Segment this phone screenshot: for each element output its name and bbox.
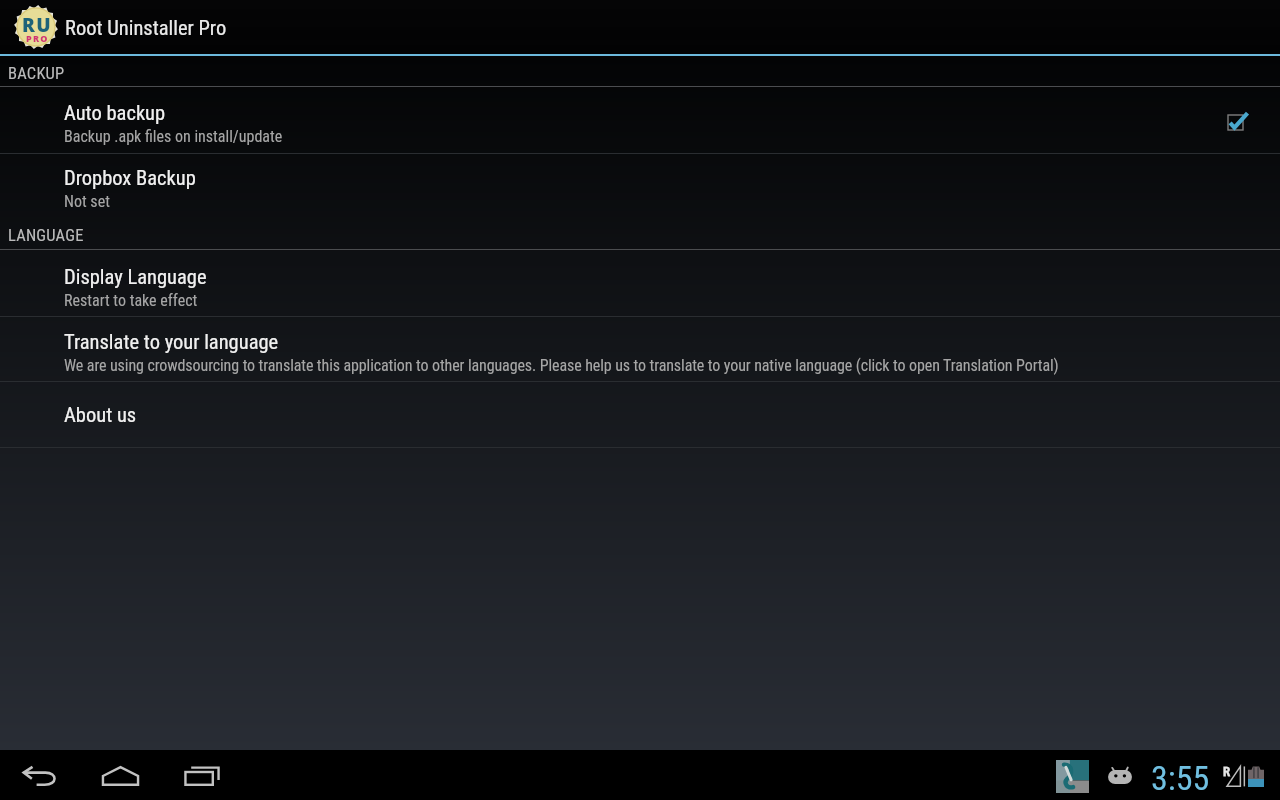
staticText: Display Language bbox=[64, 265, 207, 289]
button[interactable]: System update bbox=[1107, 767, 1133, 784]
staticText: Auto backup bbox=[64, 101, 166, 125]
staticText: R bbox=[1223, 764, 1231, 779]
button[interactable]: Notification bbox=[1056, 760, 1089, 793]
button[interactable]: Home bbox=[94, 765, 146, 787]
staticText: Dropbox Backup bbox=[64, 166, 196, 190]
button[interactable]: Dropbox Backup bbox=[0, 154, 1280, 218]
button[interactable]: About us bbox=[0, 382, 1280, 446]
staticText: Translate to your language bbox=[64, 330, 279, 354]
staticText: Root Uninstaller Pro bbox=[65, 16, 227, 40]
staticText: Not set bbox=[64, 192, 110, 211]
staticText: Backup .apk files on install/update bbox=[64, 127, 283, 146]
staticText: 3:55 bbox=[1151, 758, 1210, 798]
button[interactable]: Root Uninstaller Pro bbox=[14, 5, 58, 49]
staticText: LANGUAGE bbox=[8, 226, 84, 245]
other: Battery bbox=[1248, 766, 1264, 787]
staticText: RU bbox=[22, 12, 53, 38]
button[interactable]: Auto backup bbox=[0, 87, 1280, 153]
staticText: About us bbox=[64, 403, 137, 427]
button[interactable]: Back bbox=[14, 765, 66, 787]
button[interactable]: Display Language bbox=[0, 250, 1280, 316]
staticText: PRO bbox=[26, 32, 49, 44]
staticText: Restart to take effect bbox=[64, 291, 198, 310]
button[interactable]: Translate to your language bbox=[0, 317, 1280, 381]
button[interactable]: Auto backup toggle bbox=[1198, 87, 1280, 153]
button[interactable]: Recent apps bbox=[176, 765, 228, 787]
staticText: BACKUP bbox=[8, 64, 65, 83]
other: Signal strength bbox=[1223, 766, 1245, 787]
staticText: We are using crowdsourcing to translate … bbox=[64, 356, 1059, 375]
